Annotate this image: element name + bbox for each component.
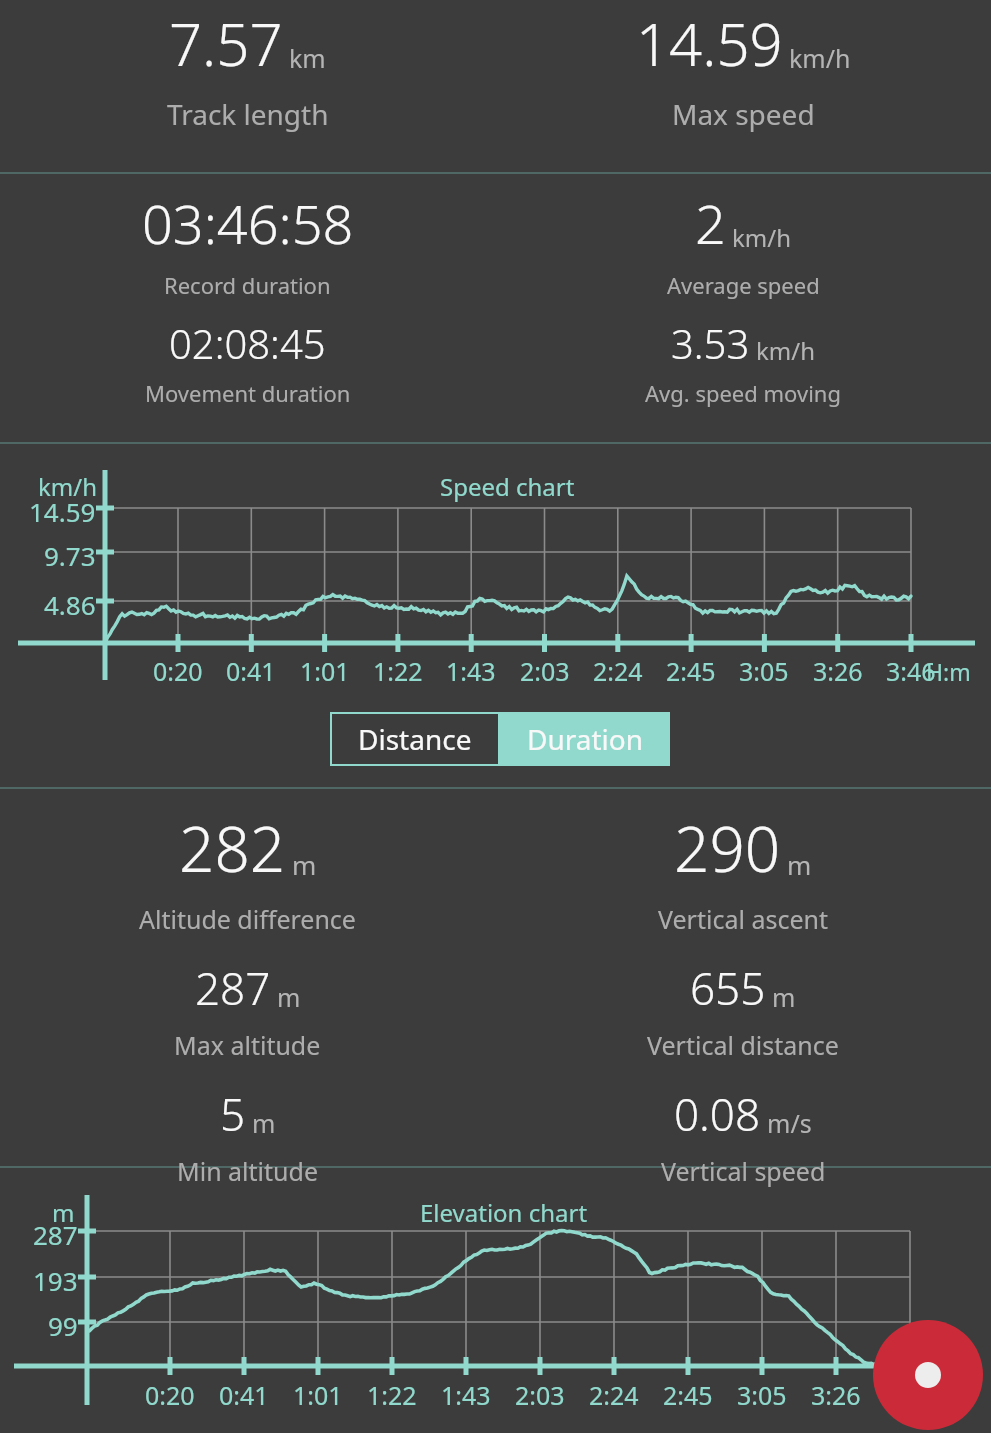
staticText: m [52,1196,75,1229]
staticText: km [289,41,326,75]
staticText: 14.59 [29,494,96,529]
staticText: Track length [167,95,329,133]
staticText: Distance [358,720,472,758]
button[interactable]: Distance [330,712,500,766]
staticText: 2:03 [515,1378,565,1412]
staticText: 5 [220,1084,246,1144]
staticText: 3:26 [811,1378,861,1412]
staticText: 1:01 [300,654,350,688]
staticText: m [292,847,317,882]
staticText: 2:24 [593,654,643,688]
staticText: 2:03 [520,654,570,688]
staticText: Speed chart [440,470,575,503]
staticText: m [277,980,301,1014]
staticText: Record duration [164,270,331,300]
staticText: Vertical distance [647,1028,839,1062]
staticText: 1:43 [446,654,496,688]
staticText: m [772,980,796,1014]
staticText: 2:45 [663,1378,713,1412]
staticText: 02:08:45 [169,316,326,370]
staticText: Vertical speed [661,1154,826,1188]
staticText: Movement duration [145,378,351,408]
staticText: 0.08 [674,1084,761,1144]
staticText: 9.73 [44,538,96,573]
staticText: km/h [732,221,792,254]
button[interactable]: Duration [500,712,670,766]
staticText: Duration [527,720,644,758]
staticText: 3:05 [737,1378,787,1412]
staticText: Avg. speed moving [645,378,841,408]
staticText: 0:41 [219,1378,269,1412]
staticText: 7.57 [169,4,283,83]
staticText: 1:22 [373,654,423,688]
staticText: 3:26 [813,654,863,688]
staticText: 2:24 [589,1378,639,1412]
staticText: Max altitude [174,1028,321,1062]
staticText: 655 [690,958,766,1018]
staticText: 0:20 [153,654,203,688]
staticText: 0:41 [226,654,276,688]
button[interactable]: Record [873,1320,983,1430]
staticText: km/h [38,470,98,503]
staticText: 99 [48,1308,78,1343]
staticText: 1:22 [367,1378,417,1412]
staticText: 03:46:58 [142,186,354,260]
staticText: 4.86 [44,587,96,622]
staticText: 282 [179,806,286,890]
staticText: 1:01 [293,1378,343,1412]
staticText: H:m [926,656,971,687]
staticText: 2:45 [666,654,716,688]
staticText: 14.59 [636,4,783,83]
staticText: Min altitude [177,1154,318,1188]
staticText: Vertical ascent [658,902,828,936]
staticText: 287 [195,958,271,1018]
staticText: 3:46 [886,654,936,688]
staticText: Average speed [667,270,820,300]
staticText: m [787,847,812,882]
staticText: Altitude difference [139,902,356,936]
staticText: Max speed [672,95,815,133]
staticText: 287 [33,1217,78,1252]
staticText: 193 [33,1263,78,1298]
staticText: 2 [695,186,726,260]
staticText: m/s [767,1106,812,1140]
staticText: Elevation chart [420,1196,588,1229]
staticText: km/h [789,41,851,75]
staticText: 3:05 [739,654,789,688]
staticText: km/h [756,334,816,367]
staticText: 1:43 [441,1378,491,1412]
staticText: 3.53 [671,316,750,370]
staticText: 290 [674,806,781,890]
staticText: m [252,1106,276,1140]
staticText: 0:20 [145,1378,195,1412]
